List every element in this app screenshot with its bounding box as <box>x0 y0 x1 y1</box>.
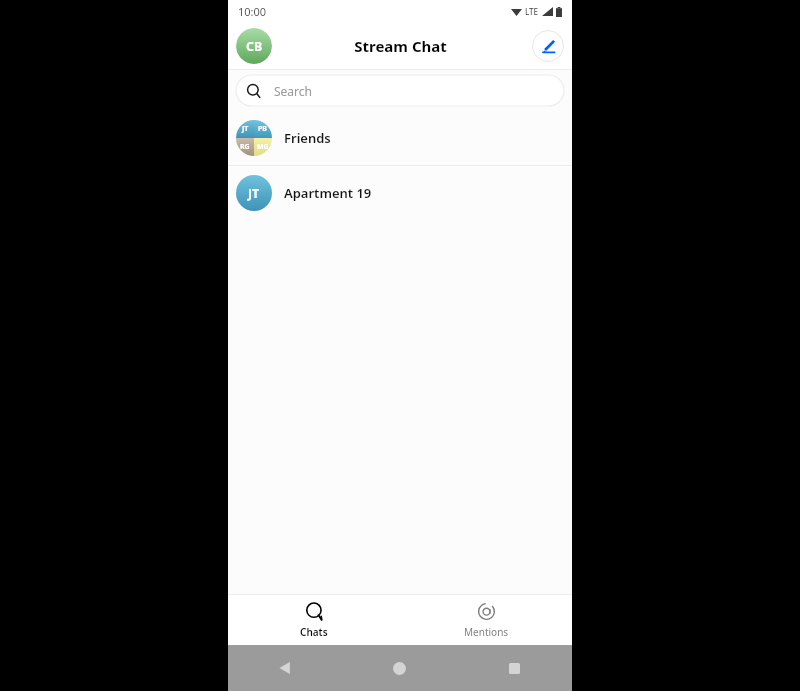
staticText: PB <box>258 124 268 134</box>
button[interactable]: Recent apps <box>457 645 572 691</box>
staticText: MG <box>257 142 269 152</box>
staticText: 10:00 <box>238 4 267 19</box>
staticText: Search <box>274 83 312 99</box>
staticText: Mentions <box>464 625 509 639</box>
staticText: LTE <box>525 6 539 17</box>
button[interactable]: Mentions <box>400 595 572 645</box>
button[interactable]: Home <box>342 645 457 691</box>
staticText: JT <box>242 124 249 134</box>
button[interactable]: CB <box>236 28 272 64</box>
button[interactable]: New message <box>532 30 564 62</box>
staticText: Stream Chat <box>354 36 447 56</box>
staticText: RG <box>240 142 250 152</box>
staticText: Apartment 19 <box>284 184 372 202</box>
staticText: Friends <box>284 129 331 147</box>
button[interactable]: Back <box>228 645 342 691</box>
button[interactable]: JT <box>228 111 572 165</box>
button[interactable]: Chats <box>228 595 400 645</box>
staticText: Chats <box>300 625 328 639</box>
button[interactable]: JT <box>228 166 572 220</box>
staticText: CB <box>246 38 263 55</box>
staticText: JT <box>248 185 260 202</box>
button[interactable]: Search <box>236 75 564 106</box>
